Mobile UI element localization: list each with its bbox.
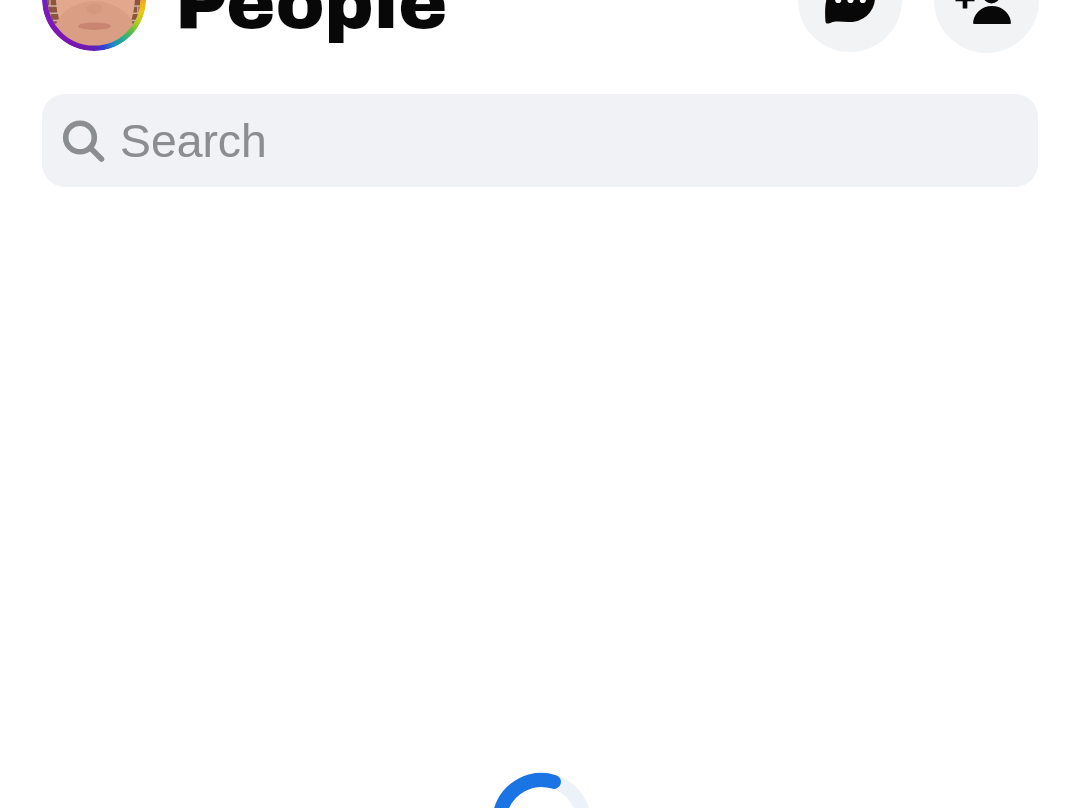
button[interactable]: Search [42, 94, 1038, 187]
button[interactable]: Messenger [798, 0, 902, 52]
staticText: People [175, 0, 448, 43]
button[interactable]: Add friend [934, 0, 1039, 53]
button[interactable]: Your profile [42, 0, 146, 51]
staticText: Search [120, 115, 267, 167]
